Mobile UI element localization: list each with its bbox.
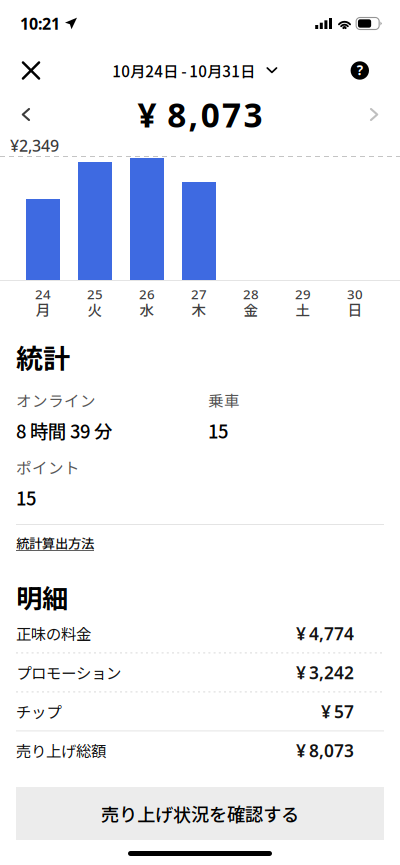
staticText: 売り上げ総額 <box>16 739 106 762</box>
staticText: 26 <box>139 285 155 303</box>
button[interactable]: Help <box>337 47 400 94</box>
staticText: 29 <box>295 285 311 303</box>
staticText: 月 <box>35 299 50 320</box>
staticText: オンライン <box>16 389 96 411</box>
staticText: ¥ 4,774 <box>296 622 354 645</box>
button[interactable]: Next week <box>354 100 400 129</box>
staticText: 27 <box>191 285 207 303</box>
staticText: 金 <box>243 299 258 320</box>
staticText: 売り上げ状況を確認する <box>101 800 299 827</box>
staticText: 火 <box>87 299 102 320</box>
staticText: 10:21 <box>20 13 60 34</box>
staticText: ¥ 3,242 <box>296 661 354 684</box>
staticText: 木 <box>191 299 206 320</box>
staticText: 乗車 <box>208 389 240 411</box>
staticText: プロモーション <box>16 661 121 684</box>
staticText: 日 <box>347 299 362 320</box>
button[interactable]: Previous week <box>0 100 46 129</box>
staticText: 統計 <box>16 337 70 377</box>
staticText: 15 <box>208 417 228 444</box>
staticText: 10月24日 - 10月31日 <box>112 59 255 81</box>
staticText: 8 時間 39 分 <box>16 417 112 444</box>
staticText: 15 <box>16 484 36 511</box>
button[interactable]: 統計算出方法 <box>16 525 94 556</box>
staticText: ¥ 8,073 <box>296 739 354 762</box>
button[interactable]: Close <box>0 48 53 92</box>
staticText: 統計算出方法 <box>16 533 94 552</box>
staticText: ¥ 57 <box>321 700 354 723</box>
button[interactable]: 10月24日 - 10月31日 <box>112 49 277 91</box>
staticText: 土 <box>295 299 310 320</box>
staticText: ¥2,349 <box>10 135 59 156</box>
staticText: 正味の料金 <box>16 622 91 645</box>
staticText: 25 <box>87 285 103 303</box>
staticText: チップ <box>16 700 61 723</box>
staticText: 水 <box>139 299 154 320</box>
staticText: 28 <box>243 285 259 303</box>
staticText: ¥ 8,073 <box>138 92 262 137</box>
staticText: 30 <box>347 285 363 303</box>
staticText: ? <box>357 61 363 79</box>
staticText: 明細 <box>16 578 68 616</box>
button[interactable]: 売り上げ状況を確認する <box>16 787 384 840</box>
staticText: ポイント <box>16 456 80 478</box>
staticText: 24 <box>35 285 51 303</box>
